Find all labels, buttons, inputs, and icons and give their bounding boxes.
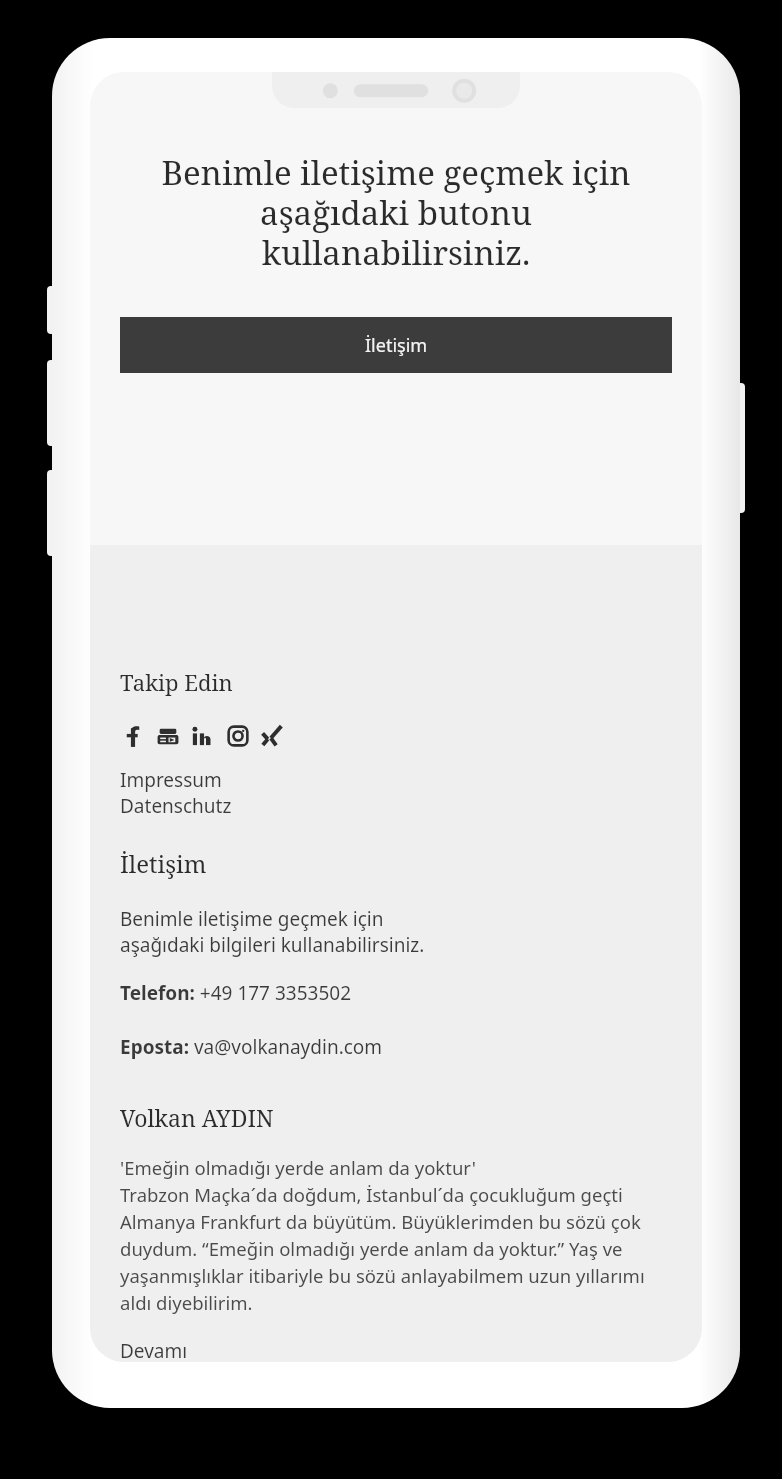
staticText: İletişim bbox=[365, 333, 428, 358]
button[interactable]: Impressum bbox=[120, 767, 222, 793]
staticText: Volkan AYDIN bbox=[120, 1102, 274, 1133]
button[interactable]: Facebook bbox=[120, 723, 146, 749]
staticText: Benimle iletişime geçmek için aşağıdaki … bbox=[104, 150, 688, 275]
button[interactable]: Xing bbox=[260, 723, 286, 749]
staticText: İletişim bbox=[120, 847, 207, 880]
button[interactable]: Devamı bbox=[120, 1338, 188, 1362]
button[interactable]: LinkedIn bbox=[190, 723, 216, 749]
button[interactable]: Eposta: va@volkanaydin.com bbox=[120, 1034, 383, 1060]
button[interactable]: Telefon: +49 177 3353502 bbox=[120, 980, 352, 1006]
button[interactable]: Instagram bbox=[225, 723, 251, 749]
staticText: 'Emeğin olmadığı yerde anlam da yoktur' … bbox=[120, 1155, 678, 1316]
button[interactable]: Takip Edin bbox=[120, 667, 233, 697]
button[interactable]: YouTube bbox=[155, 723, 181, 749]
staticText: Benimle iletişime geçmek için aşağıdaki … bbox=[120, 906, 425, 958]
button[interactable]: İletişim bbox=[120, 317, 672, 373]
button[interactable]: Datenschutz bbox=[120, 793, 232, 819]
